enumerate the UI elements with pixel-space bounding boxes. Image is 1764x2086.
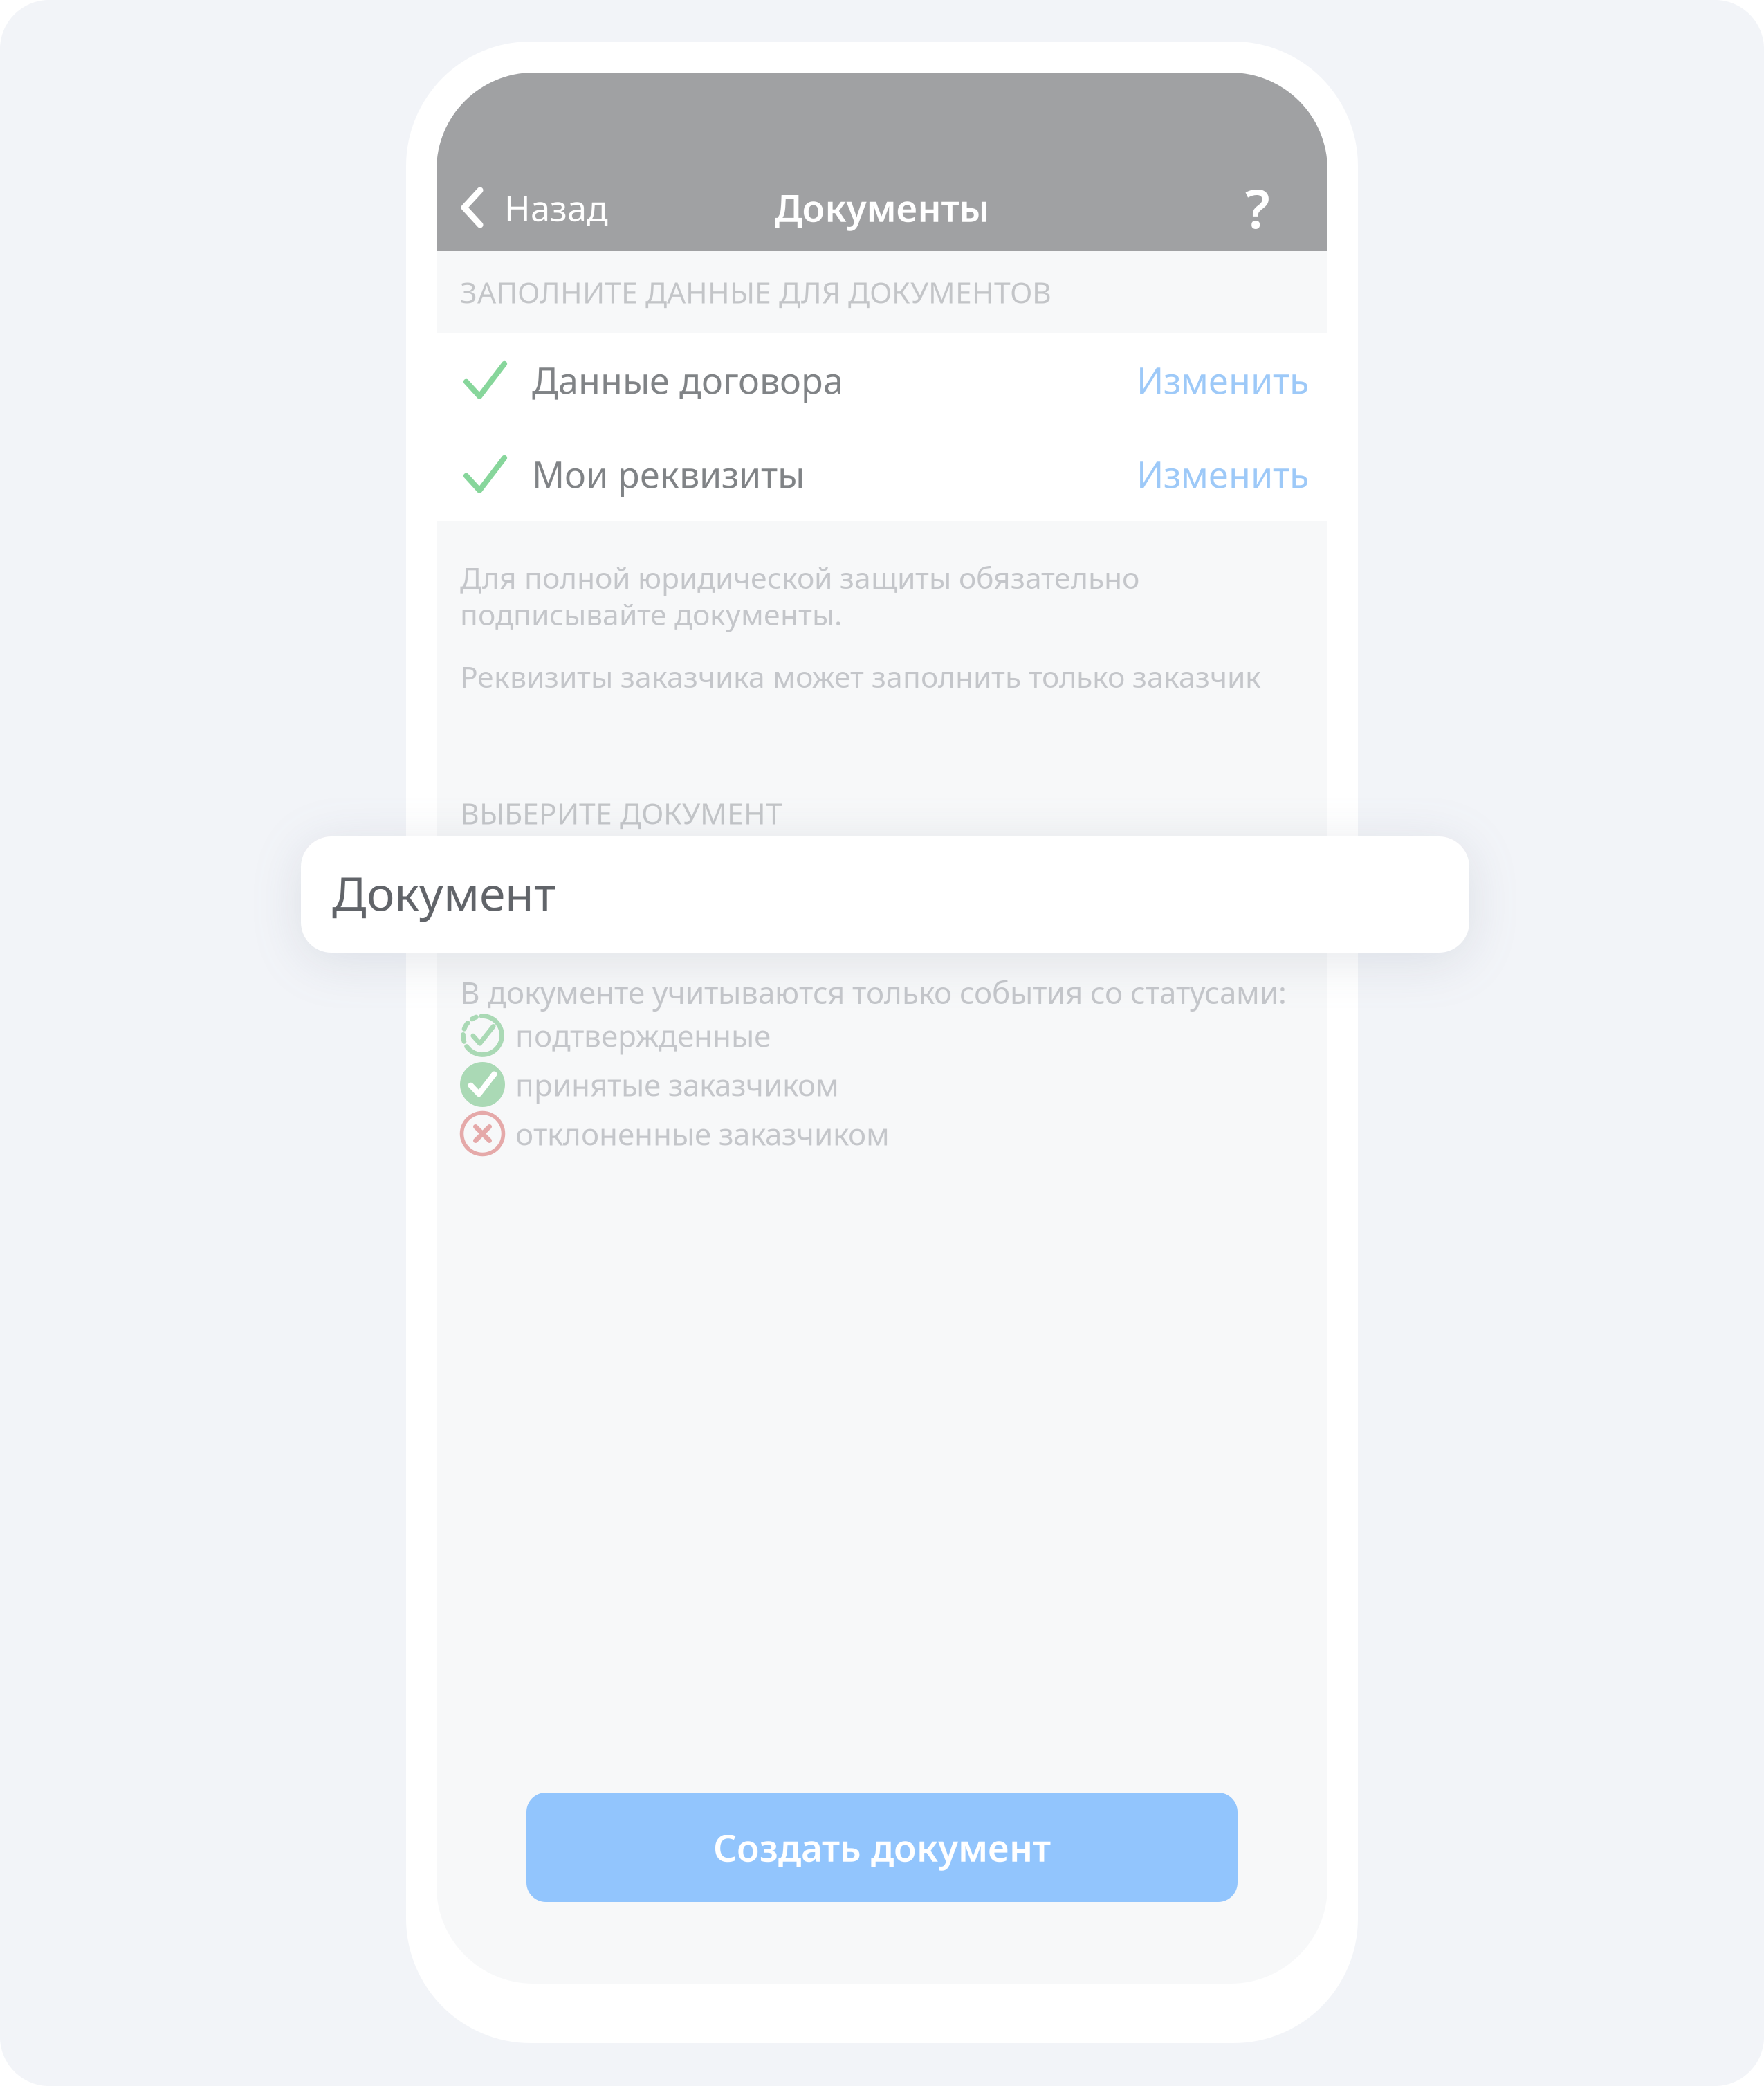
staticText: отклоненные заказчиком [515,1113,890,1154]
button[interactable]: Мои реквизиты [437,427,1327,521]
staticText: Документ [332,861,556,924]
staticText: принятые заказчиком [515,1064,839,1105]
button[interactable]: Создать документ [526,1793,1238,1902]
staticText: Изменить [1137,356,1309,404]
staticText: Мои реквизиты [532,450,805,498]
staticText: В документе учитываются только события с… [460,972,1287,1012]
staticText: Для полной юридической защиты обязательн… [460,558,1139,597]
button[interactable]: Документ [301,836,1469,953]
button[interactable]: Данные договора [437,333,1327,427]
staticText: Создать документ [713,1823,1051,1872]
staticText: ? [1245,172,1270,243]
staticText: ЗАПОЛНИТЕ ДАННЫЕ ДЛЯ ДОКУМЕНТОВ [460,272,1051,312]
staticText: Изменить [1137,450,1309,498]
staticText: подтвержденные [515,1015,771,1056]
button[interactable]: Назад [437,170,625,246]
staticText: Реквизиты заказчика может заполнить толь… [460,657,1261,696]
staticText: Назад [504,184,608,231]
button[interactable]: Справка [1188,170,1327,246]
staticText: ВЫБЕРИТЕ ДОКУМЕНТ [460,793,782,833]
staticText: подписывайте документы. [460,594,842,634]
staticText: Документы [774,183,990,232]
staticText: Данные договора [532,356,843,404]
